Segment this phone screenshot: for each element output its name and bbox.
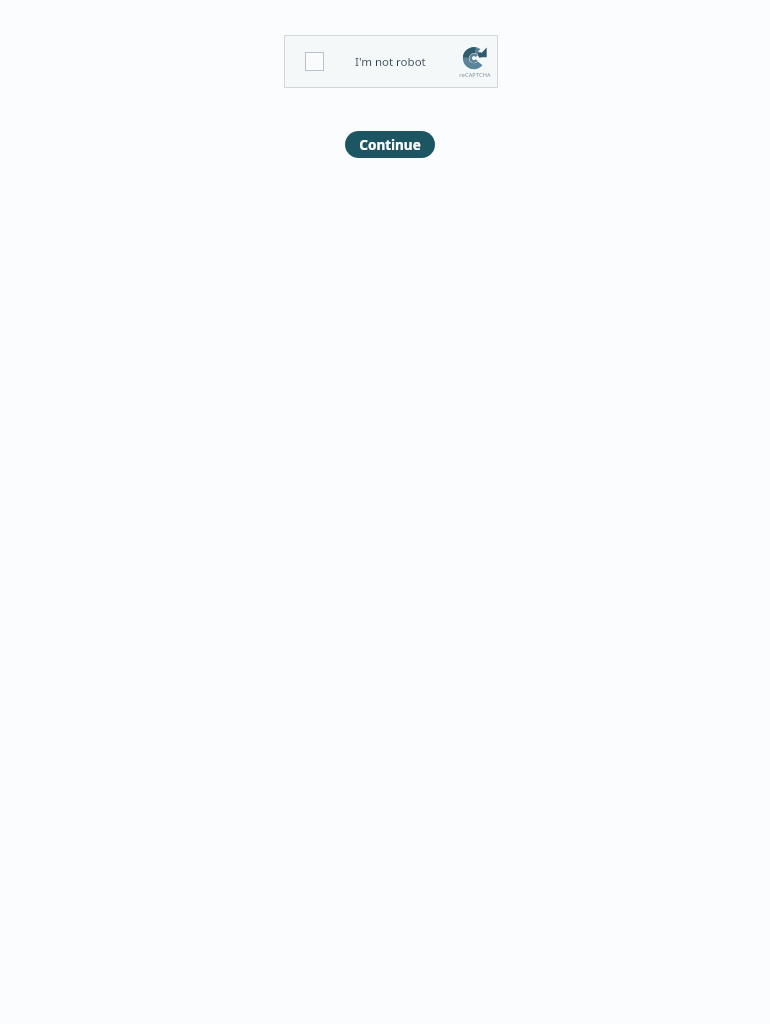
staticText: Continue [359,136,421,154]
button[interactable]: Continue [345,131,435,158]
staticText: reCAPTCHA [459,71,491,78]
button[interactable]: I'm not a robot checkbox [284,35,498,88]
button[interactable]: I'm not a robot checkbox [305,52,324,71]
staticText: I'm not robot [355,54,426,70]
